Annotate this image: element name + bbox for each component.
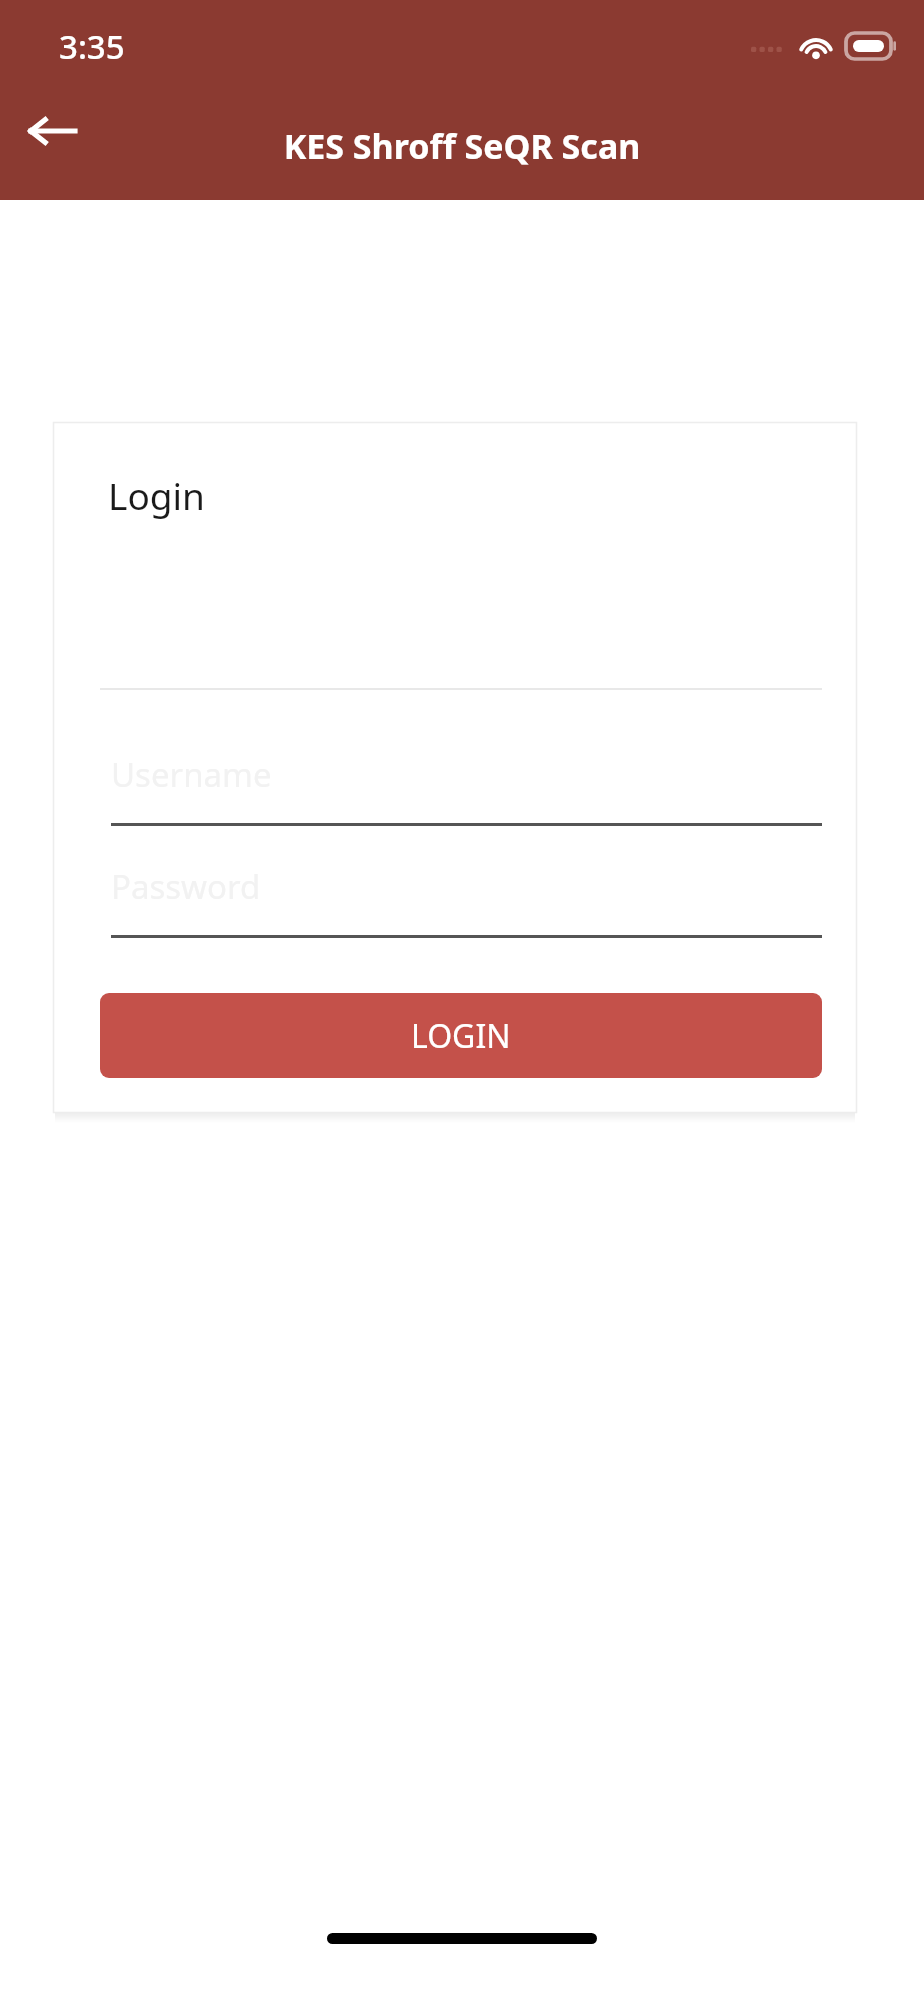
staticText: Password (111, 864, 261, 909)
button[interactable]: Password (100, 834, 822, 938)
staticText: Login (108, 470, 205, 520)
staticText: KES Shroff SeQR Scan (0, 123, 924, 169)
button[interactable]: Back (16, 95, 88, 167)
staticText: 3:35 (59, 24, 125, 69)
staticText: Username (111, 752, 272, 797)
staticText: LOGIN (411, 1014, 511, 1058)
button[interactable]: Username (100, 722, 822, 826)
button[interactable]: LOGIN (100, 993, 822, 1078)
